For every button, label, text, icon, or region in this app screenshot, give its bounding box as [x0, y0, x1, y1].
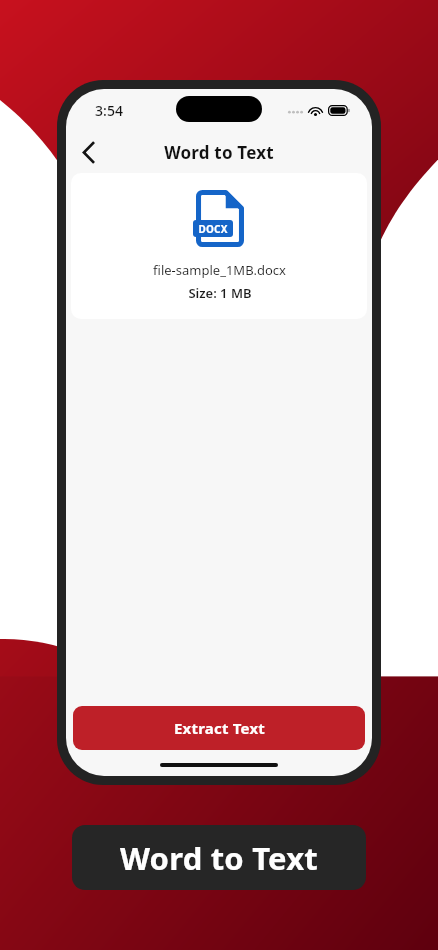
staticText: Word to Text — [164, 141, 274, 164]
staticText: Size: 1 MB — [188, 284, 252, 302]
staticText: Word to Text — [120, 837, 318, 879]
staticText: DOCX — [198, 222, 228, 236]
button[interactable]: DOCX — [71, 173, 367, 319]
staticText: file-sample_1MB.docx — [153, 261, 286, 279]
button[interactable]: Back — [70, 134, 106, 170]
button[interactable]: Extract Text — [73, 706, 365, 750]
button[interactable]: Word to Text — [72, 825, 366, 890]
staticText: Extract Text — [174, 718, 265, 738]
staticText: 3:54 — [95, 101, 123, 120]
